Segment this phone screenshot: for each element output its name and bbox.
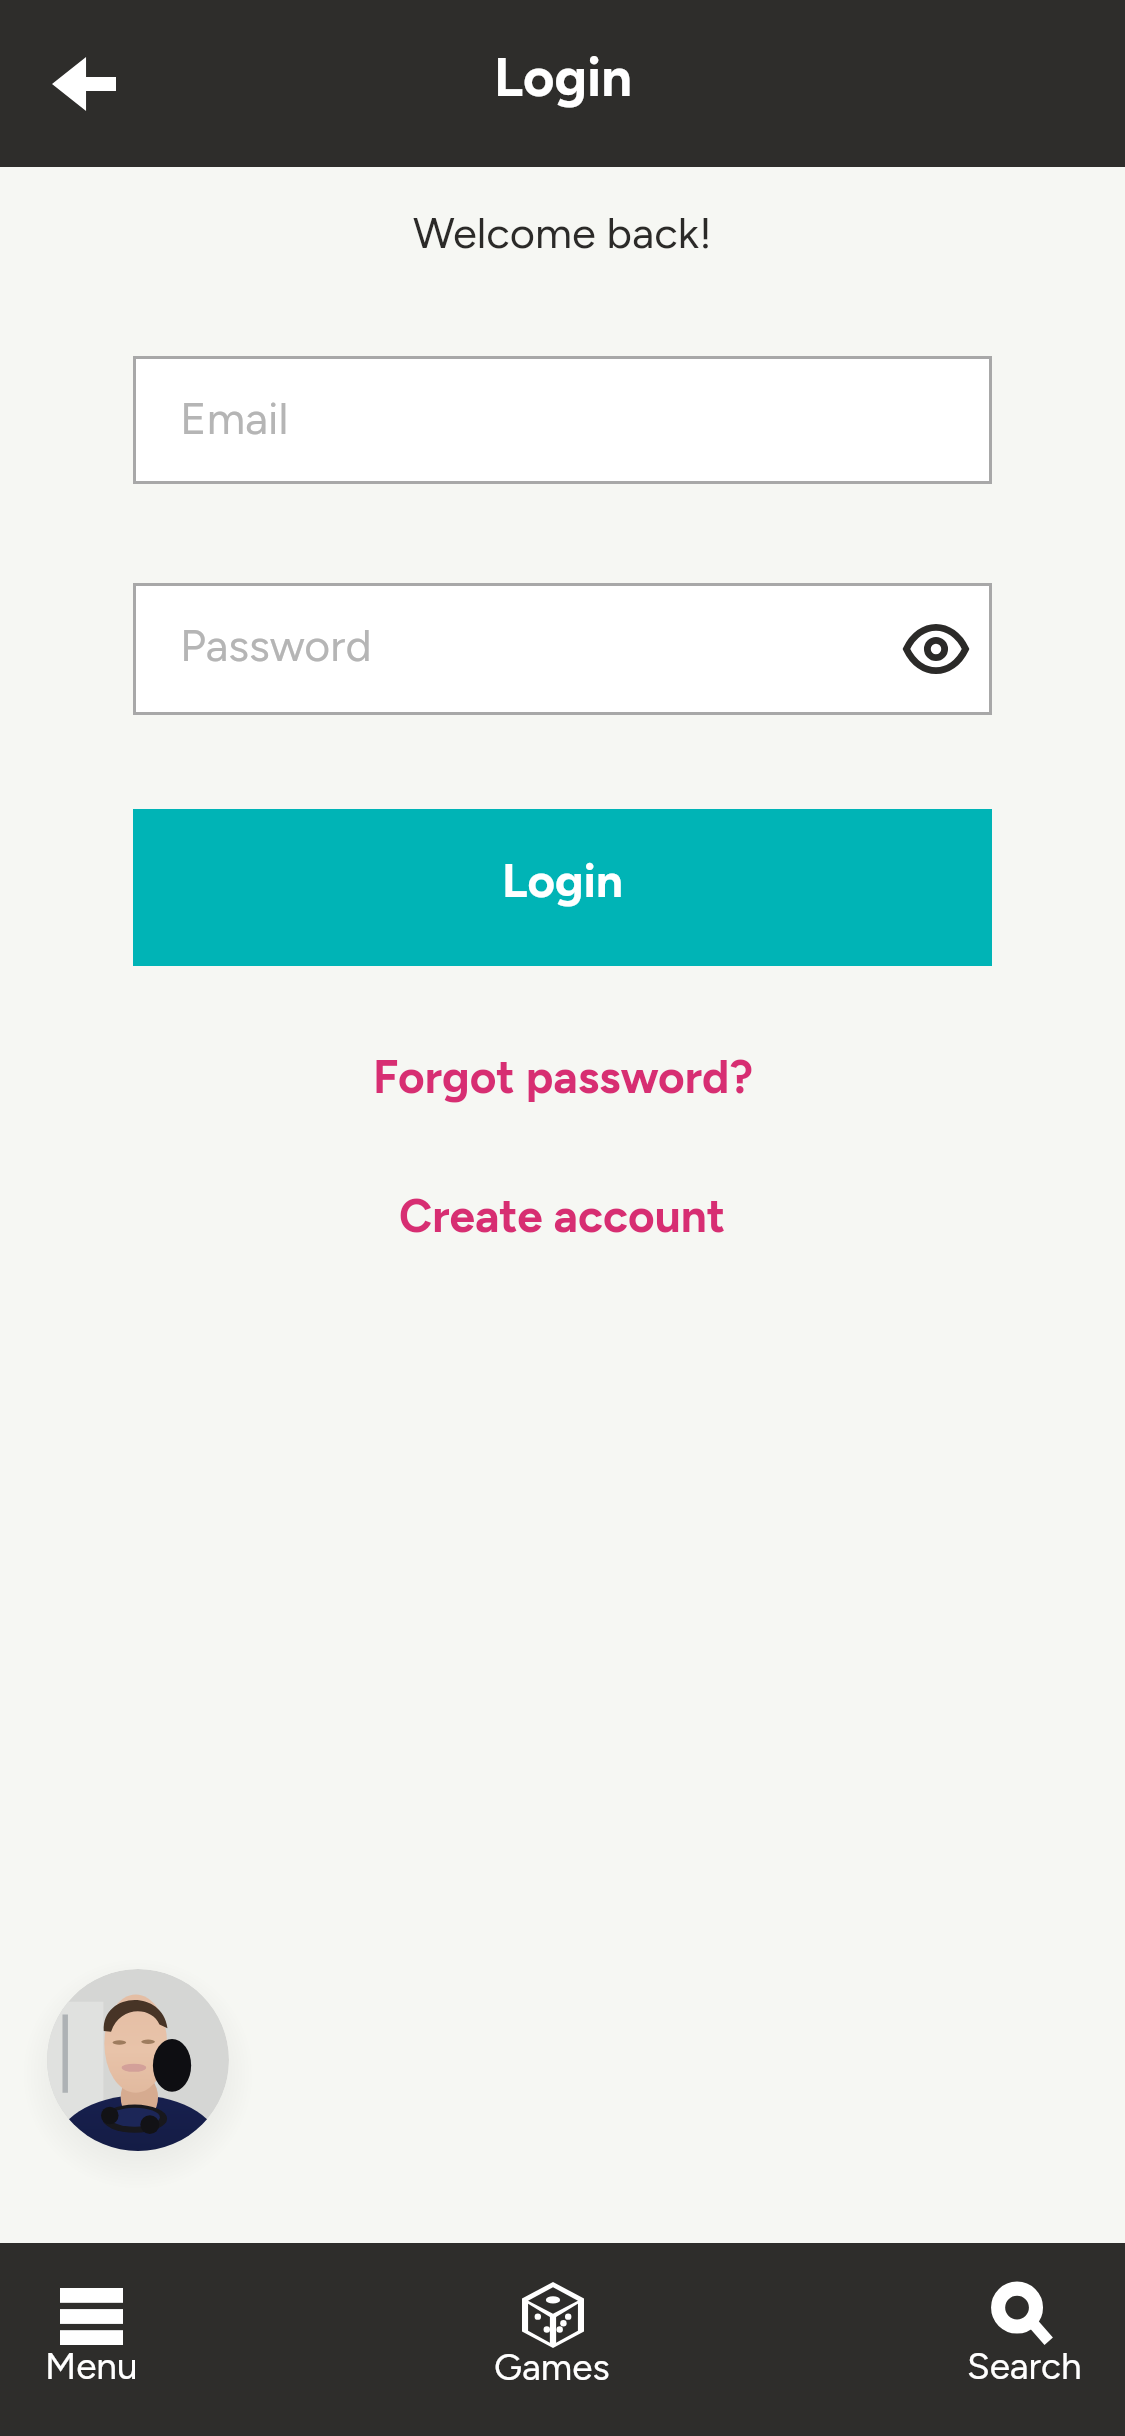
staticText: Forgot password? <box>373 1049 753 1104</box>
staticText: Email <box>180 391 289 445</box>
staticText: Login <box>502 852 623 909</box>
button[interactable]: Profile <box>47 1969 229 2151</box>
staticText: Create account <box>399 1188 726 1243</box>
button[interactable]: Create account <box>0 1170 1125 1261</box>
staticText: Login <box>494 45 632 110</box>
staticText: Games <box>494 2345 610 2389</box>
staticText: Password <box>180 619 372 673</box>
staticText: Menu <box>45 2344 138 2388</box>
button[interactable]: Games <box>375 2243 750 2436</box>
button[interactable]: Email <box>133 356 992 484</box>
staticText: Search <box>967 2344 1082 2388</box>
button[interactable]: Back <box>28 28 140 140</box>
button[interactable]: Forgot password? <box>0 1031 1125 1122</box>
button[interactable]: Show password <box>893 606 979 692</box>
button[interactable]: Search <box>750 2243 1125 2436</box>
button[interactable]: Menu <box>0 2243 375 2436</box>
button[interactable]: Password <box>133 583 992 715</box>
staticText: Welcome back! <box>413 207 712 259</box>
button[interactable]: Login <box>133 809 992 966</box>
